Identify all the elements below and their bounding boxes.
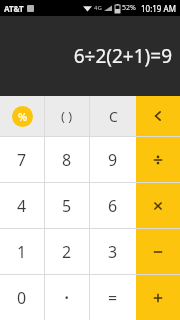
button[interactable]: 9 — [90, 137, 136, 182]
button[interactable]: Subtract — [136, 229, 180, 274]
button[interactable]: · — [45, 275, 89, 320]
button[interactable]: 7 — [0, 137, 44, 182]
button[interactable]: Backspace — [136, 96, 180, 136]
staticText: 4G — [94, 4, 102, 12]
button[interactable]: Multiply — [136, 183, 180, 228]
staticText: ( ) — [61, 107, 73, 125]
staticText: · — [64, 284, 70, 311]
staticText: 0 — [17, 287, 27, 309]
button[interactable]: C — [90, 96, 136, 136]
staticText: = — [108, 287, 118, 309]
button[interactable]: 8 — [45, 137, 89, 182]
button[interactable]: 5 — [45, 183, 89, 228]
staticText: AT&T — [4, 3, 24, 14]
staticText: 6÷2(2+1)=9 — [73, 43, 172, 69]
staticText: % — [18, 109, 28, 124]
staticText: 8 — [62, 149, 72, 171]
staticText: 2 — [62, 241, 72, 263]
button[interactable]: Add — [136, 275, 180, 320]
staticText: 3 — [108, 241, 118, 263]
staticText: 6 — [108, 195, 118, 217]
staticText: 10:19 AM — [141, 3, 176, 14]
button[interactable]: ( ) — [45, 96, 89, 136]
button[interactable]: 2 — [45, 229, 89, 274]
staticText: 7 — [17, 149, 27, 171]
button[interactable]: 3 — [90, 229, 136, 274]
staticText: 4 — [17, 195, 27, 217]
staticText: 5 — [62, 195, 72, 217]
staticText: 52% — [122, 3, 136, 13]
staticText: 1 — [17, 241, 27, 263]
button[interactable]: Divide — [136, 137, 180, 182]
button[interactable]: 0 — [0, 275, 44, 320]
button[interactable]: 6 — [90, 183, 136, 228]
button[interactable]: Percent — [0, 96, 44, 136]
button[interactable]: 4 — [0, 183, 44, 228]
button[interactable]: = — [90, 275, 136, 320]
staticText: 9 — [108, 149, 118, 171]
button[interactable]: 1 — [0, 229, 44, 274]
staticText: C — [109, 107, 118, 126]
